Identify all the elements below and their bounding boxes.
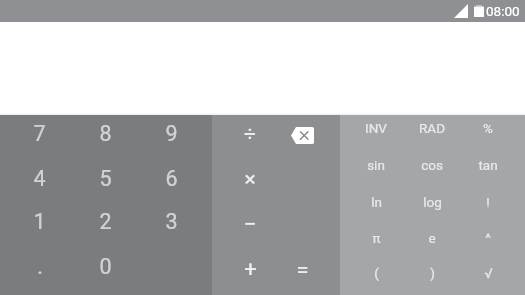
button[interactable]: ^ [460, 224, 516, 260]
button[interactable]: . [7, 251, 72, 295]
button[interactable]: − [224, 206, 276, 251]
staticText: e [428, 230, 436, 246]
button[interactable]: log [404, 188, 460, 224]
staticText: INV [365, 120, 387, 136]
staticText: cos [421, 157, 443, 173]
button[interactable]: 7 [7, 115, 72, 161]
staticText: π [372, 230, 381, 246]
button[interactable]: √ [460, 260, 516, 295]
button[interactable]: 3 [138, 206, 204, 251]
button[interactable]: × [224, 161, 276, 206]
button[interactable]: ln [348, 188, 404, 224]
button[interactable]: % [460, 115, 516, 152]
button[interactable]: ! [460, 188, 516, 224]
staticText: 7 [33, 121, 46, 146]
button[interactable]: + [224, 251, 276, 295]
button[interactable]: 6 [138, 161, 204, 206]
button[interactable]: 8 [72, 115, 138, 161]
staticText: ) [430, 265, 435, 281]
button[interactable]: 2 [72, 206, 138, 251]
staticText: ( [374, 265, 379, 281]
button[interactable]: π [348, 224, 404, 260]
staticText: + [244, 257, 257, 283]
button[interactable]: e [404, 224, 460, 260]
button[interactable]: sin [348, 152, 404, 188]
staticText: ^ [485, 230, 491, 246]
button[interactable]: tan [460, 152, 516, 188]
staticText: 8 [99, 121, 112, 146]
button[interactable]: RAD [404, 115, 460, 152]
button[interactable]: 5 [72, 161, 138, 206]
button[interactable]: 9 [138, 115, 204, 161]
staticText: ! [486, 194, 490, 210]
staticText: √ [484, 265, 493, 281]
staticText: ln [371, 194, 382, 210]
staticText: sin [367, 157, 385, 173]
button[interactable]: ÷ [224, 115, 276, 161]
staticText: − [243, 211, 257, 238]
staticText: ÷ [244, 122, 256, 147]
button[interactable]: 4 [7, 161, 72, 206]
button[interactable]: INV [348, 115, 404, 152]
button[interactable]: = [276, 251, 328, 295]
staticText: = [296, 257, 309, 283]
staticText: 3 [165, 209, 178, 234]
staticText: 5 [99, 166, 112, 191]
button[interactable]: Delete [276, 115, 328, 161]
staticText: . [37, 254, 43, 279]
staticText: 9 [165, 121, 178, 146]
staticText: 0 [99, 254, 112, 279]
staticText: 6 [165, 166, 178, 191]
other: Battery full [474, 5, 484, 17]
button[interactable]: cos [404, 152, 460, 188]
staticText: tan [478, 157, 498, 173]
other: Mobile signal [454, 4, 468, 18]
staticText: 4 [33, 166, 46, 191]
button[interactable]: ( [348, 260, 404, 295]
staticText: RAD [419, 120, 445, 136]
staticText: log [423, 194, 442, 210]
button[interactable]: 0 [72, 251, 138, 295]
staticText: × [244, 167, 256, 192]
button[interactable]: 1 [7, 206, 72, 251]
staticText: 2 [99, 209, 112, 234]
button[interactable]: ) [404, 260, 460, 295]
staticText: 08:00 [486, 3, 520, 19]
staticText: 1 [33, 209, 46, 234]
staticText: % [483, 120, 493, 136]
